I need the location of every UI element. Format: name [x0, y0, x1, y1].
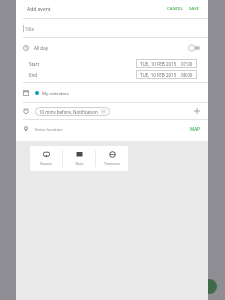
staticText: Enter location [35, 126, 64, 132]
button[interactable]: Start [29, 58, 197, 69]
staticText: 10 mins before, Notification [39, 109, 98, 115]
staticText: TUE, 10 FEB 2015 08:00 [140, 72, 193, 78]
staticText: MAP [190, 126, 200, 132]
staticText: Add event [27, 6, 51, 13]
button[interactable]: CANCEL [164, 2, 186, 16]
button[interactable]: Add reminder [192, 106, 202, 116]
button[interactable]: 10 mins before, Notification [35, 107, 110, 116]
staticText: End [29, 72, 38, 78]
button[interactable]: End [29, 69, 197, 80]
staticText: My calendars [42, 90, 69, 96]
staticText: CANCEL [167, 6, 183, 12]
button[interactable]: Add [202, 279, 217, 294]
button[interactable]: MAP [188, 124, 202, 134]
staticText: SAVE [189, 6, 199, 12]
button[interactable]: Repeat [30, 146, 62, 171]
button[interactable]: My calendars [23, 83, 200, 102]
button[interactable]: Title [23, 19, 200, 37]
button[interactable]: SAVE [186, 2, 208, 16]
staticText: All day [34, 45, 48, 51]
staticText: TUE, 10 FEB 2015 07:00 [140, 61, 193, 67]
button[interactable]: Timezone [96, 146, 128, 171]
staticText: Timezone [104, 161, 120, 166]
staticText: Title [25, 26, 34, 32]
staticText: Start [29, 61, 40, 67]
staticText: Note [75, 161, 84, 166]
button[interactable]: Note [63, 146, 95, 171]
button[interactable]: All day toggle [188, 44, 200, 52]
staticText: Repeat [40, 161, 52, 166]
